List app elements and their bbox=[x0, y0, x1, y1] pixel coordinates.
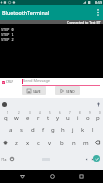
staticText: s bbox=[20, 126, 23, 134]
button[interactable]: x bbox=[22, 136, 33, 149]
button[interactable]: Enter bbox=[93, 155, 100, 162]
button[interactable]: Left bbox=[83, 156, 89, 162]
button[interactable]: CRLF bbox=[2, 79, 14, 85]
staticText: l bbox=[92, 126, 94, 134]
button[interactable]: Right bbox=[89, 156, 95, 162]
staticText: o bbox=[86, 114, 90, 122]
staticText: n bbox=[72, 139, 76, 147]
staticText: 2 bbox=[18, 111, 20, 115]
staticText: Send Message bbox=[23, 78, 51, 83]
button[interactable]: 0 bbox=[93, 110, 103, 123]
staticText: w bbox=[14, 114, 19, 122]
staticText: 8 bbox=[79, 111, 81, 115]
button[interactable]: b bbox=[56, 136, 68, 149]
button[interactable]: k bbox=[78, 123, 88, 136]
staticText: f bbox=[42, 126, 45, 134]
button[interactable]: d bbox=[27, 123, 38, 136]
button[interactable]: 3 bbox=[22, 110, 33, 123]
staticText: 9 bbox=[89, 111, 91, 115]
staticText: i bbox=[77, 114, 79, 122]
button[interactable]: 5 bbox=[43, 110, 53, 123]
button[interactable]: a bbox=[5, 123, 16, 136]
staticText: u bbox=[66, 114, 70, 122]
staticText: v bbox=[48, 139, 52, 147]
button[interactable]: Home bbox=[45, 170, 59, 183]
button[interactable]: 4 bbox=[33, 110, 43, 123]
button[interactable]: 6 bbox=[53, 110, 63, 123]
staticText: z bbox=[15, 139, 18, 147]
button[interactable]: 1 bbox=[0, 110, 11, 123]
button[interactable]: Back bbox=[15, 170, 29, 183]
staticText: y bbox=[56, 114, 60, 122]
button[interactable]: SEND bbox=[55, 86, 80, 95]
button[interactable]: s bbox=[16, 123, 27, 136]
button[interactable]: h bbox=[58, 123, 68, 136]
staticText: Connected to Test BT bbox=[67, 20, 101, 24]
staticText: e bbox=[26, 114, 30, 122]
staticText: SEND bbox=[66, 89, 75, 93]
button[interactable]: More options bbox=[93, 5, 103, 20]
button[interactable]: Space bbox=[22, 154, 70, 164]
button[interactable]: c bbox=[33, 136, 44, 149]
staticText: 7 bbox=[69, 111, 71, 115]
staticText: STEP 2 bbox=[1, 37, 14, 42]
button[interactable]: Shift bbox=[0, 136, 11, 149]
button[interactable]: Google bbox=[1, 101, 8, 108]
button[interactable]: Emoji bbox=[7, 154, 16, 164]
button[interactable]: 9 bbox=[83, 110, 93, 123]
staticText: q bbox=[4, 114, 8, 122]
button[interactable]: z bbox=[11, 136, 22, 149]
button[interactable]: 2 bbox=[11, 110, 22, 123]
staticText: m bbox=[83, 139, 89, 147]
button[interactable]: Backspace bbox=[92, 136, 103, 149]
staticText: j bbox=[72, 126, 74, 134]
staticText: CRLF bbox=[6, 80, 14, 84]
staticText: STEP 1 bbox=[1, 32, 14, 37]
button[interactable]: j bbox=[68, 123, 78, 136]
staticText: 5 bbox=[49, 111, 51, 115]
staticText: 6 bbox=[59, 111, 61, 115]
staticText: x bbox=[26, 139, 30, 147]
button[interactable]: l bbox=[88, 123, 98, 136]
button[interactable]: Send Message bbox=[22, 78, 100, 83]
staticText: h bbox=[61, 126, 65, 134]
staticText: ?1a bbox=[1, 157, 7, 162]
staticText: r bbox=[37, 114, 40, 122]
button[interactable]: SAVE bbox=[22, 86, 46, 95]
button[interactable]: v bbox=[44, 136, 56, 149]
staticText: STEP 0 bbox=[1, 27, 14, 32]
button[interactable]: 8 bbox=[73, 110, 83, 123]
staticText: SAVE bbox=[33, 89, 41, 93]
staticText: t bbox=[47, 114, 50, 122]
staticText: k bbox=[81, 126, 85, 134]
button[interactable]: n bbox=[68, 136, 80, 149]
staticText: a bbox=[9, 126, 13, 134]
button[interactable]: g bbox=[48, 123, 58, 136]
button[interactable]: Voice input bbox=[95, 101, 102, 108]
button[interactable]: Recents bbox=[74, 170, 88, 183]
staticText: d bbox=[31, 126, 35, 134]
button[interactable]: f bbox=[38, 123, 48, 136]
staticText: 1 bbox=[7, 111, 9, 115]
staticText: 4 bbox=[39, 111, 41, 115]
staticText: 0 bbox=[99, 111, 101, 115]
staticText: c bbox=[37, 139, 40, 147]
button[interactable]: ?1a bbox=[0, 154, 8, 164]
button[interactable]: 7 bbox=[63, 110, 73, 123]
staticText: 8:59 bbox=[95, 0, 102, 5]
button[interactable]: m bbox=[80, 136, 92, 149]
staticText: 3 bbox=[29, 111, 31, 115]
staticText: g bbox=[51, 126, 55, 134]
staticText: b bbox=[60, 139, 64, 147]
staticText: p bbox=[96, 114, 100, 122]
staticText: BluetoothTerminal bbox=[2, 9, 50, 16]
